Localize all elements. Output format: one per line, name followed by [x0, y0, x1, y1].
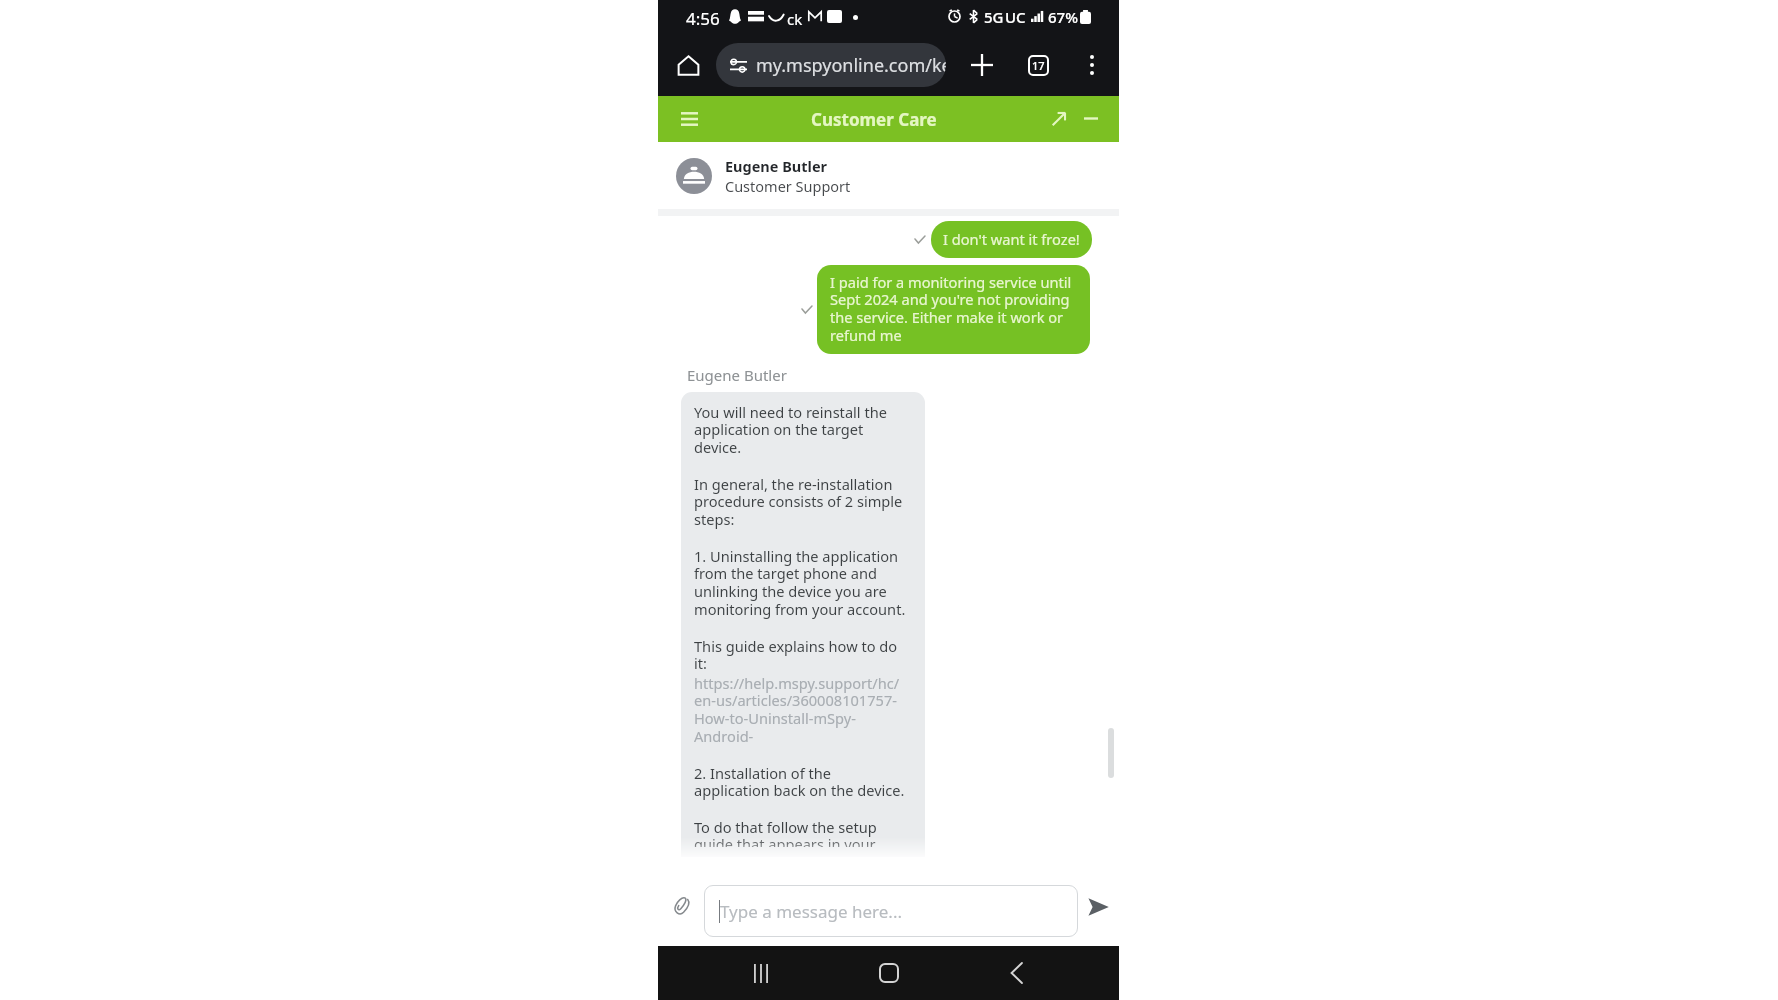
- button[interactable]: Home: [669, 46, 707, 84]
- button[interactable]: Open in new window: [1044, 104, 1073, 133]
- button[interactable]: Minimize: [1076, 104, 1105, 133]
- button[interactable]: More options: [1072, 45, 1112, 85]
- staticText: Type a message here...: [720, 900, 903, 923]
- staticText: This guide explains how to do it:: [694, 636, 908, 673]
- button[interactable]: Recent apps: [737, 949, 785, 997]
- staticText: I don't want it froze!: [943, 229, 1080, 249]
- button[interactable]: You will need to reinstall the applicati…: [681, 392, 925, 857]
- button[interactable]: my.mspyonline.com/key: [716, 43, 946, 87]
- staticText: Eugene Butler: [725, 156, 828, 176]
- staticText: UC: [1005, 7, 1026, 27]
- staticText: 1. Uninstalling the application from the…: [694, 546, 908, 619]
- button[interactable]: Send: [1082, 891, 1114, 923]
- staticText: In general, the re-installation procedur…: [694, 474, 908, 529]
- staticText: ck: [787, 9, 803, 29]
- staticText: 17: [1032, 58, 1045, 73]
- staticText: Customer Care: [811, 108, 937, 131]
- staticText: 4:56: [686, 7, 720, 30]
- button[interactable]: Type a message here...: [704, 885, 1078, 937]
- button[interactable]: Attach file: [666, 890, 696, 920]
- button[interactable]: Home: [865, 949, 913, 997]
- staticText: Eugene Butler: [687, 365, 787, 385]
- button[interactable]: Tabs: [1018, 45, 1058, 85]
- staticText: 5G: [984, 7, 1004, 27]
- staticText: 2. Installation of the application back …: [694, 763, 908, 800]
- button[interactable]: New tab: [962, 45, 1002, 85]
- button[interactable]: I paid for a monitoring service until Se…: [817, 265, 1090, 354]
- staticText: You will need to reinstall the applicati…: [694, 402, 908, 457]
- staticText: https://help.mspy.support/hc/en-us/artic…: [694, 673, 908, 746]
- button[interactable]: Back: [992, 949, 1040, 997]
- staticText: my.mspyonline.com/key: [756, 53, 946, 78]
- staticText: Customer Support: [725, 176, 851, 196]
- button[interactable]: Eugene Butler: [658, 142, 1119, 209]
- button[interactable]: I don't want it froze!: [931, 221, 1092, 258]
- button[interactable]: Menu: [674, 104, 704, 134]
- staticText: I paid for a monitoring service until Se…: [830, 272, 1072, 345]
- staticText: 67%: [1048, 7, 1078, 27]
- staticText: To do that follow the setup guide that a…: [694, 817, 908, 847]
